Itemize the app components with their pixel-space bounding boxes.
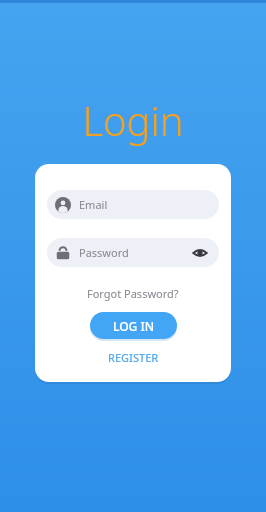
staticText: Forgot Password? <box>87 286 179 301</box>
staticText: LOG IN <box>113 318 154 334</box>
button[interactable]: REGISTER <box>102 348 165 367</box>
button[interactable]: Forgot Password? <box>83 284 183 303</box>
staticText: REGISTER <box>108 350 159 365</box>
staticText: Password <box>79 245 129 260</box>
button[interactable]: LOG IN <box>90 312 177 339</box>
staticText: Email <box>79 197 108 212</box>
staticText: Login <box>82 93 184 147</box>
button[interactable]: Password <box>47 238 219 267</box>
button[interactable]: Show password <box>191 244 209 262</box>
button[interactable]: Email <box>47 190 219 219</box>
